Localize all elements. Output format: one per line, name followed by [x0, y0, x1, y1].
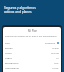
staticText: 12	[56, 56, 59, 59]
button[interactable]: Plan	[5, 40, 59, 45]
button[interactable]: Estado	[5, 45, 59, 50]
staticText: Mi Plan	[28, 29, 37, 33]
staticText: Plan	[5, 41, 10, 44]
staticText: activos and planes	[4, 10, 32, 14]
staticText: Beneficiario	[5, 61, 19, 64]
button[interactable]: Cuota	[5, 50, 59, 55]
staticText: 45 EUR	[51, 51, 59, 54]
staticText: Vencimiento	[5, 66, 19, 69]
staticText: Cuota	[5, 51, 12, 54]
staticText: Premium	[45, 41, 56, 44]
staticText: Activo	[52, 46, 59, 49]
staticText: Estado	[5, 46, 13, 49]
staticText: Ana	[54, 61, 59, 64]
staticText: 12/25	[52, 66, 59, 69]
staticText: Seguros y algoritmos	[4, 6, 36, 10]
staticText: Consulta el estado de tu plan y tus movi…	[5, 35, 57, 38]
button[interactable]: Vencimiento	[5, 65, 59, 70]
staticText: Pagos	[5, 56, 12, 59]
button[interactable]: Pagos	[5, 55, 59, 60]
button[interactable]: Beneficiario	[5, 60, 59, 65]
